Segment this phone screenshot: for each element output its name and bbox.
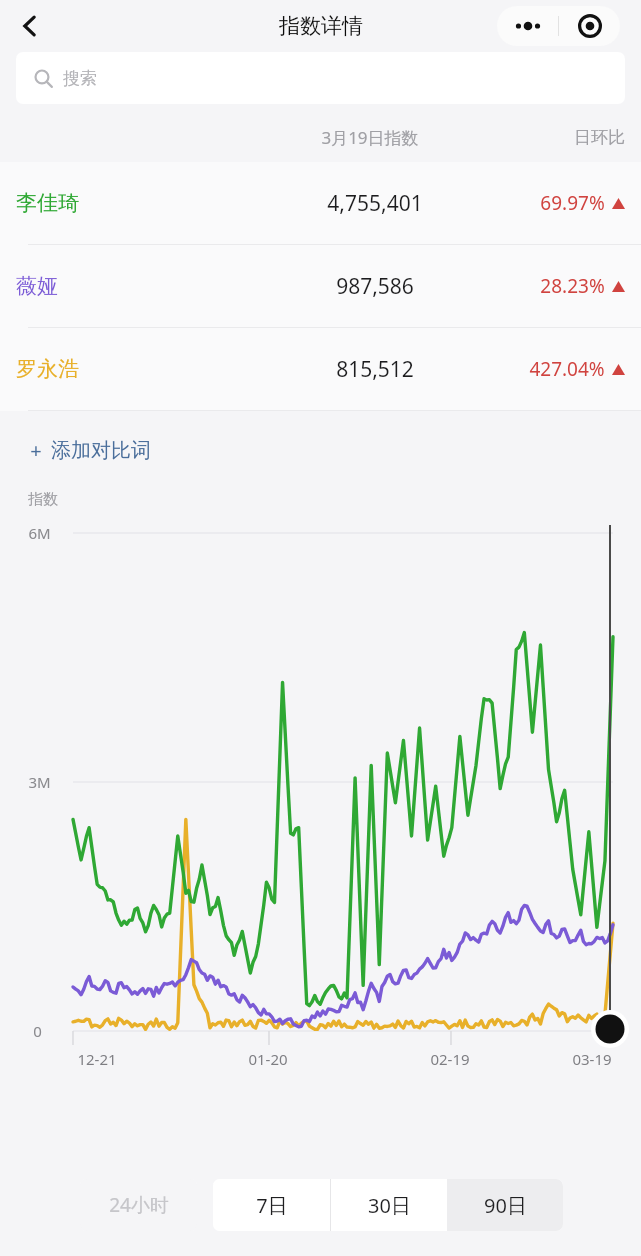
staticText: 3月19日指数 bbox=[321, 126, 419, 149]
button[interactable]: 30日 bbox=[331, 1179, 447, 1231]
staticText: 02-19 bbox=[430, 1049, 470, 1069]
staticText: 4,755,401 bbox=[327, 189, 423, 218]
staticText: 罗永浩 bbox=[16, 356, 79, 382]
button[interactable]: 24小时 bbox=[80, 1179, 197, 1231]
staticText: 0 bbox=[33, 1021, 42, 1041]
button[interactable]: 90日 bbox=[447, 1179, 563, 1231]
staticText: 30日 bbox=[368, 1192, 411, 1219]
staticText: 6M bbox=[28, 523, 51, 543]
staticText: 69.97% bbox=[540, 190, 605, 216]
staticText: 搜索 bbox=[63, 68, 97, 89]
staticText: 28.23% bbox=[540, 273, 605, 299]
staticText: 03-19 bbox=[572, 1049, 612, 1069]
staticText: 李佳琦 bbox=[16, 190, 79, 216]
staticText: 90日 bbox=[484, 1192, 527, 1219]
staticText: 薇娅 bbox=[16, 273, 58, 299]
button[interactable]: 搜索 bbox=[16, 52, 625, 104]
staticText: + bbox=[30, 437, 42, 464]
button[interactable]: Close bbox=[559, 6, 620, 46]
staticText: 指数 bbox=[28, 490, 58, 509]
staticText: 添加对比词 bbox=[51, 438, 151, 463]
staticText: 7日 bbox=[256, 1192, 288, 1219]
staticText: 815,512 bbox=[336, 355, 414, 384]
staticText: 427.04% bbox=[529, 356, 605, 382]
button[interactable]: 薇娅 bbox=[0, 245, 641, 327]
staticText: 12-21 bbox=[77, 1049, 117, 1069]
staticText: 日环比 bbox=[574, 127, 625, 148]
staticText: 指数详情 bbox=[279, 13, 363, 39]
button[interactable]: 李佳琦 bbox=[0, 162, 641, 244]
button[interactable]: + bbox=[28, 433, 153, 468]
button[interactable]: More bbox=[497, 6, 558, 46]
button[interactable]: 7日 bbox=[213, 1179, 330, 1231]
staticText: 24小时 bbox=[109, 1192, 169, 1218]
button[interactable]: Back bbox=[8, 4, 52, 48]
staticText: 987,586 bbox=[336, 272, 414, 301]
button[interactable]: 罗永浩 bbox=[0, 328, 641, 410]
staticText: 3M bbox=[28, 772, 51, 792]
staticText: 01-20 bbox=[248, 1049, 288, 1069]
